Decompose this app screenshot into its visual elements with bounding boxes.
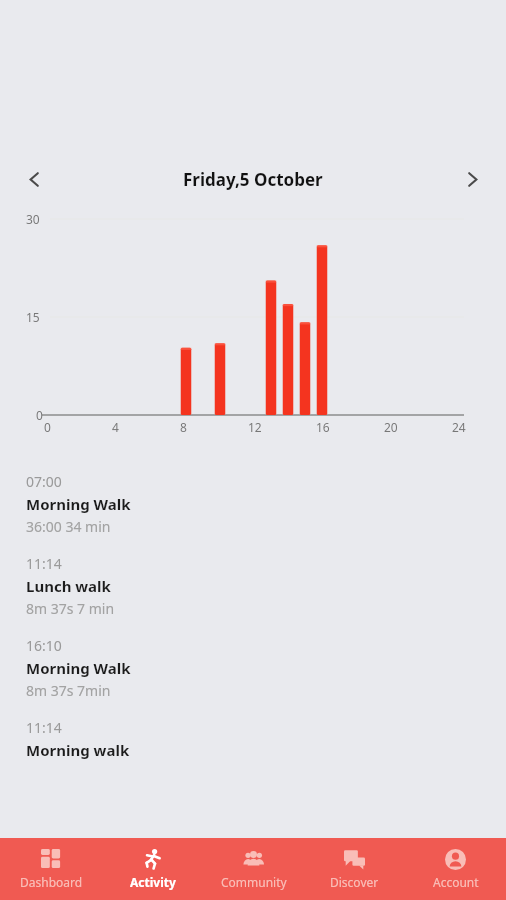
button[interactable]: Previous day xyxy=(18,163,50,195)
staticText: 0 xyxy=(36,407,43,423)
staticText: 11:14 xyxy=(26,718,62,737)
staticText: 0 xyxy=(44,419,51,435)
button[interactable]: 11:14 xyxy=(26,553,506,619)
staticText: 8m 37s 7min xyxy=(26,681,111,700)
staticText: 20 xyxy=(384,419,398,435)
staticText: 36:00 34 min xyxy=(26,517,111,536)
button[interactable]: 16:10 xyxy=(26,635,506,701)
button[interactable]: 11:14 xyxy=(26,717,506,761)
button[interactable]: Activity xyxy=(102,838,203,900)
staticText: Morning Walk xyxy=(26,658,131,678)
staticText: Lunch walk xyxy=(26,576,111,596)
button[interactable]: Community xyxy=(203,838,304,900)
button[interactable]: Account xyxy=(405,838,506,900)
staticText: Friday,5 October xyxy=(183,168,323,191)
staticText: 07:00 xyxy=(26,472,62,491)
staticText: Discover xyxy=(330,874,379,890)
button[interactable]: 07:00 xyxy=(26,471,506,537)
staticText: 15 xyxy=(26,309,40,325)
button[interactable]: Next day xyxy=(456,163,488,195)
staticText: 16 xyxy=(316,419,330,435)
staticText: Community xyxy=(221,874,287,890)
staticText: 24 xyxy=(452,419,466,435)
staticText: Morning walk xyxy=(26,740,130,760)
staticText: 11:14 xyxy=(26,554,62,573)
button[interactable]: Dashboard xyxy=(0,838,102,900)
staticText: 8 xyxy=(180,419,187,435)
staticText: 4 xyxy=(112,419,119,435)
staticText: 8m 37s 7 min xyxy=(26,599,115,618)
button[interactable]: Discover xyxy=(304,838,405,900)
staticText: 16:10 xyxy=(26,636,62,655)
staticText: Account xyxy=(433,874,479,890)
staticText: Morning Walk xyxy=(26,494,131,514)
staticText: Dashboard xyxy=(20,874,83,890)
staticText: Activity xyxy=(130,874,176,890)
staticText: 30 xyxy=(26,211,40,227)
staticText: 12 xyxy=(248,419,262,435)
